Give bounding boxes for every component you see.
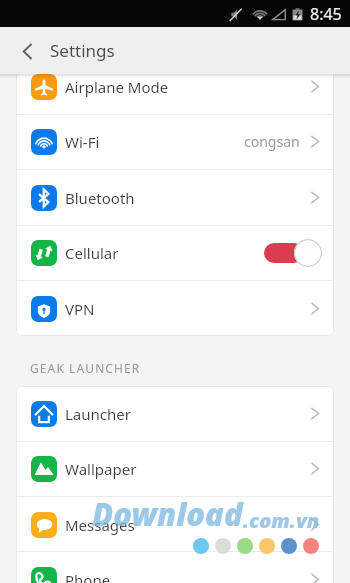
staticText: Cellular bbox=[65, 243, 119, 263]
staticText: Download bbox=[92, 493, 243, 535]
staticText: Phone bbox=[65, 570, 111, 583]
button[interactable]: Phone bbox=[16, 552, 334, 583]
button[interactable]: Wallpaper bbox=[16, 441, 334, 496]
button[interactable]: Messages bbox=[16, 497, 334, 552]
staticText: Airplane Mode bbox=[65, 77, 169, 97]
button[interactable]: Back bbox=[8, 32, 46, 70]
button[interactable]: Cellular bbox=[16, 225, 334, 280]
staticText: Wi-Fi bbox=[65, 132, 100, 152]
staticText: Wallpaper bbox=[65, 459, 137, 479]
button[interactable]: VPN bbox=[16, 281, 334, 336]
staticText: VPN bbox=[65, 299, 95, 319]
button[interactable]: Airplane Mode bbox=[16, 74, 334, 114]
button[interactable]: Launcher bbox=[16, 386, 334, 441]
button[interactable]: Bluetooth bbox=[16, 170, 334, 225]
staticText: Settings bbox=[50, 39, 115, 62]
staticText: .com.vn bbox=[243, 507, 320, 534]
staticText: congsan bbox=[244, 132, 300, 151]
button[interactable]: Wi-Fi bbox=[16, 114, 334, 169]
staticText: Bluetooth bbox=[65, 188, 135, 208]
staticText: GEAK LAUNCHER bbox=[30, 360, 141, 376]
staticText: Messages bbox=[65, 515, 135, 535]
button[interactable]: Cellular data toggle bbox=[268, 238, 322, 268]
staticText: Launcher bbox=[65, 404, 131, 424]
staticText: 8:45 bbox=[310, 3, 342, 25]
